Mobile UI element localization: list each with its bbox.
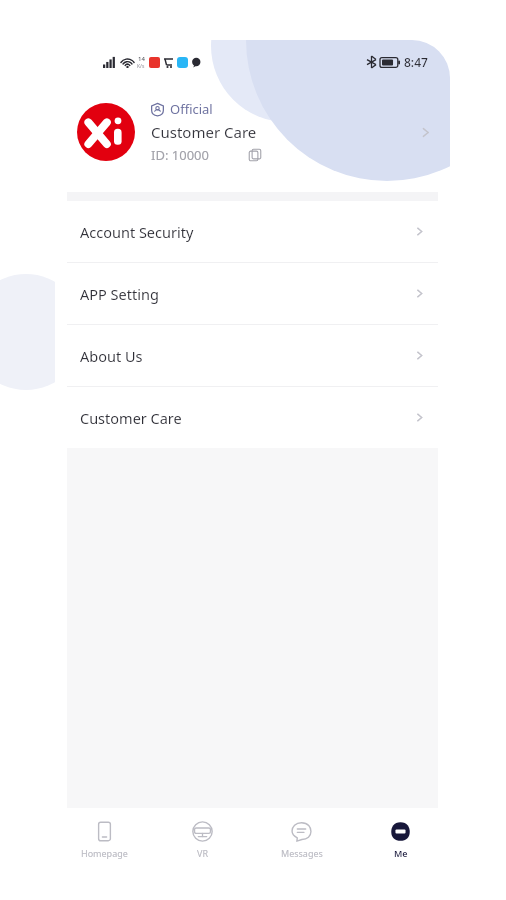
button[interactable]: About Us (55, 325, 450, 386)
button[interactable]: Copy ID (247, 147, 263, 163)
staticText: 8:47 (404, 54, 428, 70)
staticText: Customer Care (151, 122, 257, 142)
staticText: About Us (80, 346, 143, 366)
button[interactable]: Homepage (55, 808, 153, 872)
staticText: Account Security (80, 222, 194, 242)
staticText: Me (394, 847, 408, 859)
button[interactable]: Me (351, 808, 450, 872)
staticText: Official (170, 100, 213, 118)
staticText: VR (197, 847, 208, 859)
staticText: 14 (138, 55, 145, 63)
staticText: Customer Care (80, 408, 182, 428)
button[interactable]: VR (153, 808, 252, 872)
staticText: Homepage (81, 847, 128, 859)
button[interactable]: Account Security (55, 201, 450, 262)
button[interactable]: Official (55, 84, 450, 180)
staticText: Messages (281, 847, 323, 859)
button[interactable]: Messages (252, 808, 351, 872)
staticText: APP Setting (80, 284, 159, 304)
staticText: K/s (137, 63, 145, 70)
button[interactable]: Customer Care (55, 387, 450, 448)
staticText: ID: 10000 (151, 146, 209, 164)
button[interactable]: APP Setting (55, 263, 450, 324)
